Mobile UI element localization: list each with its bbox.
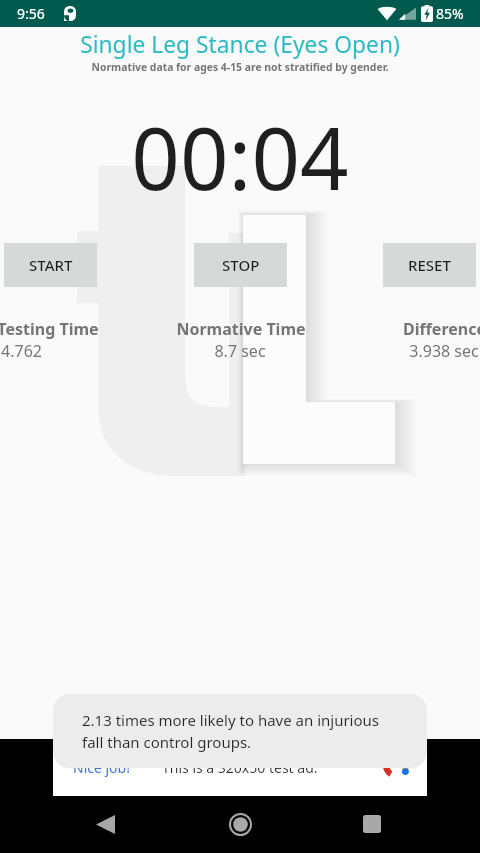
staticText: 9:56: [17, 4, 45, 23]
staticText: 8.7 sec: [214, 340, 266, 362]
button[interactable]: Testing Time: [0, 318, 198, 340]
button[interactable]: Home: [220, 804, 260, 844]
staticText: 3.938 sec: [409, 340, 479, 362]
button[interactable]: Difference: [294, 318, 480, 340]
button[interactable]: Nice job!: [53, 739, 427, 796]
staticText: Single Leg Stance (Eyes Open): [0, 29, 480, 60]
staticText: START: [29, 255, 73, 275]
button[interactable]: Recent apps: [352, 804, 392, 844]
button[interactable]: START: [4, 243, 97, 287]
button[interactable]: STOP: [194, 243, 287, 287]
button[interactable]: Normative Time: [91, 318, 391, 340]
staticText: Normative Time: [176, 318, 306, 340]
other: Ad choices: [385, 753, 415, 783]
button[interactable]: RESET: [383, 243, 476, 287]
staticText: STOP: [222, 255, 260, 275]
staticText: 4.762: [1, 340, 42, 362]
staticText: Difference: [403, 318, 480, 340]
staticText: 85%: [436, 4, 464, 23]
staticText: This is a 320x50 test ad.: [162, 758, 318, 777]
staticText: 2.13 times more likely to have an injuri…: [82, 710, 380, 753]
staticText: 00:04: [0, 99, 480, 215]
staticText: Nice job!: [73, 758, 130, 777]
button[interactable]: 2.13 times more likely to have an injuri…: [53, 694, 427, 768]
staticText: RESET: [408, 255, 451, 275]
button[interactable]: Back: [85, 804, 125, 844]
staticText: Normative data for ages 4-15 are not str…: [0, 60, 480, 74]
staticText: Testing Time: [0, 318, 99, 340]
